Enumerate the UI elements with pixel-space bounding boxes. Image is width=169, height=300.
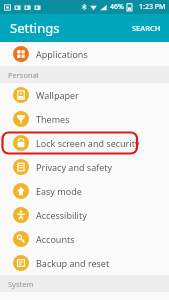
staticText: Personal <box>8 70 39 80</box>
staticText: Themes <box>36 113 70 125</box>
button[interactable]: Privacy and safety <box>0 155 169 179</box>
staticText: Lock screen and security <box>36 137 140 149</box>
staticText: System <box>8 279 34 289</box>
staticText: Privacy and safety <box>36 161 113 173</box>
staticText: Accounts <box>36 233 75 245</box>
button[interactable]: Accessibility <box>0 203 169 227</box>
staticText: SEARCH <box>132 23 161 33</box>
staticText: Settings <box>10 19 60 37</box>
staticText: 46% <box>110 2 124 12</box>
button[interactable]: Wallpaper <box>0 83 169 107</box>
button[interactable]: Applications <box>0 42 169 66</box>
staticText: Backup and reset <box>36 257 110 269</box>
staticText: 1:23 PM <box>139 2 166 12</box>
button[interactable]: Accounts <box>0 227 169 251</box>
button[interactable]: Backup and reset <box>0 251 169 275</box>
staticText: Wallpaper <box>36 89 79 101</box>
button[interactable]: Themes <box>0 107 169 131</box>
staticText: Applications <box>36 48 88 60</box>
button[interactable]: Lock screen and security <box>0 131 169 155</box>
staticText: Easy mode <box>36 185 82 197</box>
staticText: Accessibility <box>36 209 87 221</box>
button[interactable]: SEARCH <box>124 17 169 39</box>
button[interactable]: Easy mode <box>0 179 169 203</box>
